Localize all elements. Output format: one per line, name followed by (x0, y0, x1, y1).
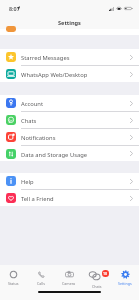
button[interactable]: Notifications (0, 129, 139, 145)
staticText: Chats (21, 117, 37, 125)
staticText: WhatsApp Web/Desktop (21, 71, 88, 79)
staticText: 10 (103, 271, 108, 276)
button[interactable]: Chats (0, 112, 139, 128)
staticText: Starred Messages (21, 54, 70, 62)
staticText: Status (8, 281, 19, 286)
staticText: Help (21, 178, 34, 186)
button[interactable]: Chats (83, 265, 111, 300)
staticText: Data and Storage Usage (21, 151, 87, 159)
staticText: Camera (62, 281, 76, 286)
button[interactable]: Settings (111, 265, 139, 300)
button[interactable]: Data and Storage Usage (0, 146, 139, 161)
button[interactable]: Camera (55, 265, 83, 300)
button[interactable]: Tell a Friend (0, 190, 139, 206)
staticText: Tell a Friend (21, 195, 54, 203)
button[interactable]: Starred Messages (0, 49, 139, 65)
button[interactable]: Calls (27, 265, 55, 300)
staticText: Account (21, 100, 44, 108)
staticText: Settings (118, 281, 132, 286)
staticText: 8:07 (9, 5, 20, 12)
staticText: Settings (58, 19, 81, 27)
button[interactable]: Status (0, 265, 27, 300)
staticText: Notifications (21, 134, 56, 142)
button[interactable]: Help (0, 173, 139, 189)
staticText: Calls (37, 281, 45, 286)
staticText: Chats (92, 284, 102, 289)
button[interactable]: Account (0, 95, 139, 111)
button[interactable]: WhatsApp Web/Desktop (0, 66, 139, 82)
